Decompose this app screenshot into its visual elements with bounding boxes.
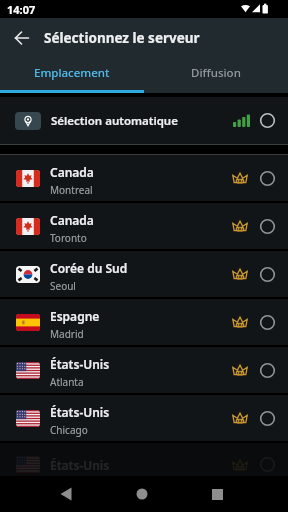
button[interactable]: Sélection automatique <box>0 97 288 144</box>
button[interactable] <box>260 457 275 472</box>
button[interactable]: Canada <box>0 203 288 249</box>
button[interactable] <box>260 267 275 282</box>
button[interactable] <box>260 219 275 234</box>
button[interactable]: États-Unis <box>0 395 288 441</box>
staticText: Espagne <box>50 308 100 324</box>
button[interactable] <box>205 476 229 512</box>
button[interactable] <box>0 18 44 57</box>
staticText: Emplacement <box>34 65 110 81</box>
staticText: États-Unis <box>50 457 110 473</box>
staticText: États-Unis <box>50 356 110 372</box>
staticText: Canada <box>50 164 94 180</box>
button[interactable]: Corée du Sud <box>0 251 288 297</box>
staticText: Seoul <box>50 279 76 293</box>
button[interactable]: Espagne <box>0 299 288 345</box>
staticText: Canada <box>50 212 94 228</box>
staticText: Sélection automatique <box>51 113 178 129</box>
staticText: Corée du Sud <box>50 260 128 276</box>
button[interactable] <box>260 113 275 128</box>
button[interactable] <box>260 363 275 378</box>
staticText: 14:07 <box>7 2 36 17</box>
button[interactable]: Emplacement <box>0 57 144 93</box>
staticText: Toronto <box>50 231 87 245</box>
button[interactable] <box>130 476 154 512</box>
staticText: Sélectionnez le serveur <box>44 29 200 47</box>
staticText: Atlanta <box>50 375 84 389</box>
staticText: Montreal <box>50 183 93 197</box>
button[interactable]: États-Unis <box>0 347 288 393</box>
staticText: États-Unis <box>50 404 110 420</box>
button[interactable] <box>260 411 275 426</box>
staticText: Chicago <box>50 423 88 437</box>
button[interactable]: Diffusion <box>144 57 288 93</box>
button[interactable]: Canada <box>0 155 288 201</box>
button[interactable]: États-Unis <box>0 443 288 476</box>
button[interactable] <box>54 476 78 512</box>
staticText: Diffusion <box>191 65 241 81</box>
button[interactable] <box>260 315 275 330</box>
staticText: Madrid <box>50 327 84 341</box>
button[interactable] <box>260 171 275 186</box>
